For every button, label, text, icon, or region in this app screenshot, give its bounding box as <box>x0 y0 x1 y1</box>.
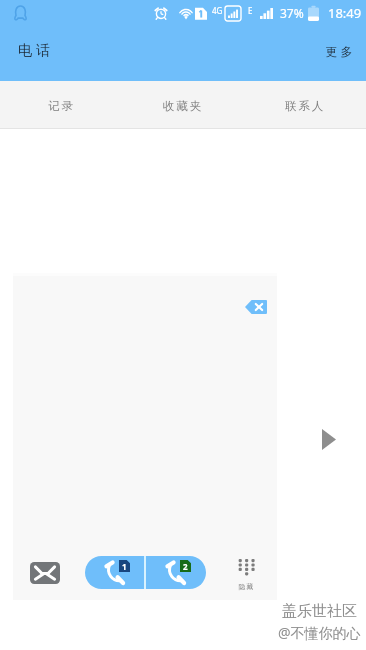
button[interactable]: 收藏夹 <box>122 81 244 128</box>
button[interactable]: Call with SIM 2 <box>146 556 206 589</box>
staticText: 1 <box>122 561 127 572</box>
button[interactable]: 电话 <box>2 34 68 70</box>
button[interactable]: Call with SIM 1 <box>85 556 144 589</box>
staticText: 记录 <box>48 99 75 113</box>
button[interactable]: 联系人 <box>244 81 366 128</box>
staticText: 盖乐世社区 <box>282 602 357 621</box>
button[interactable]: Backspace <box>239 294 273 320</box>
button[interactable]: Message <box>30 553 60 593</box>
staticText: 2 <box>183 561 188 572</box>
staticText: 18:49 <box>328 4 362 22</box>
staticText: 37% <box>280 5 304 21</box>
staticText: 更多 <box>324 44 354 59</box>
staticText: E <box>248 5 253 16</box>
button[interactable]: 记录 <box>0 81 122 128</box>
staticText: @不懂你的心 <box>278 623 361 642</box>
button[interactable]: 隐藏 <box>224 554 268 596</box>
staticText: 电话 <box>16 42 52 60</box>
staticText: 隐藏 <box>238 582 254 591</box>
staticText: 收藏夹 <box>163 99 203 113</box>
button[interactable]: 更多 <box>308 36 366 69</box>
staticText: 4G <box>212 5 223 16</box>
staticText: 联系人 <box>285 99 325 113</box>
button[interactable]: Expand <box>318 425 340 453</box>
